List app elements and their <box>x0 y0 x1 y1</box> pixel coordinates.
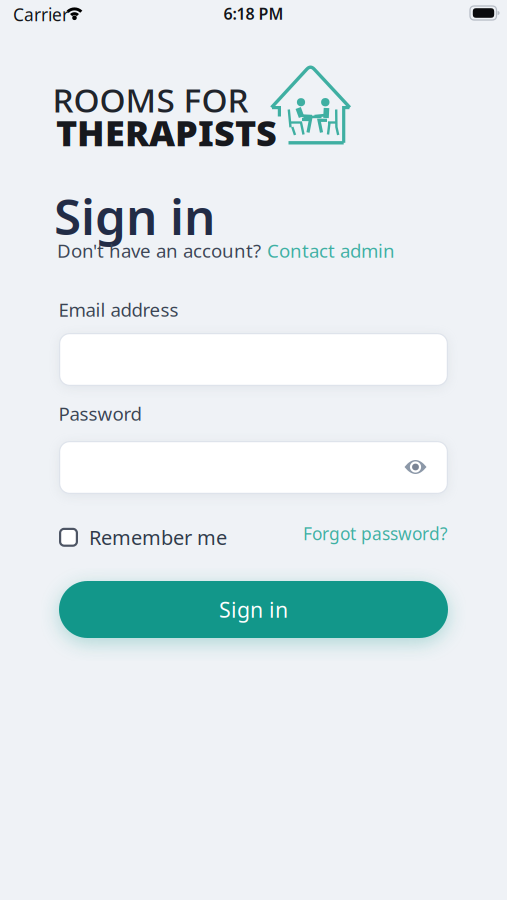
button[interactable]: Contact admin <box>267 238 395 263</box>
staticText: Remember me <box>89 524 227 551</box>
staticText: Sign in <box>219 595 288 624</box>
staticText: Carrier <box>13 3 69 26</box>
staticText: ROOMS FOR <box>52 77 248 122</box>
staticText: Email address <box>58 297 178 322</box>
staticText: Don't have an account? <box>57 238 261 263</box>
staticText: Password <box>58 401 141 426</box>
button[interactable]: Remember me <box>59 524 227 551</box>
staticText: Contact admin <box>267 238 395 263</box>
button[interactable]: Show password <box>404 459 427 475</box>
staticText: Forgot password? <box>303 522 448 545</box>
button[interactable]: Forgot password? <box>303 522 448 545</box>
button[interactable]: Sign in <box>59 581 448 638</box>
staticText: 6:18 PM <box>223 3 283 24</box>
staticText: Sign in <box>54 183 215 248</box>
staticText: THERAPISTS <box>56 108 277 156</box>
